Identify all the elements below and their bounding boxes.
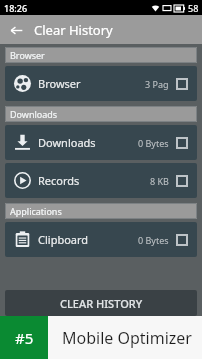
button[interactable]: Clipboard: [5, 222, 197, 257]
staticText: 58: [188, 2, 199, 14]
staticText: Clipboard: [38, 232, 138, 247]
staticText: 18:26: [4, 2, 28, 14]
staticText: Applications: [10, 205, 62, 217]
staticText: Records: [38, 173, 150, 188]
staticText: Downloads: [10, 108, 58, 120]
staticText: Browser: [38, 76, 145, 91]
button[interactable]: Downloads: [5, 125, 197, 160]
button[interactable]: Select Downloads: [176, 137, 188, 149]
button[interactable]: Browser: [5, 66, 197, 101]
button[interactable]: Select Clipboard: [176, 234, 188, 246]
button[interactable]: Records: [5, 163, 197, 198]
staticText: CLEAR HISTORY: [60, 296, 143, 311]
staticText: 8 KB: [150, 175, 169, 187]
staticText: 0 Bytes: [138, 137, 169, 149]
button[interactable]: Select Records: [176, 175, 188, 187]
staticText: Downloads: [38, 135, 138, 150]
staticText: Clear History: [34, 21, 113, 39]
staticText: Browser: [10, 49, 45, 61]
button[interactable]: Select Browser: [176, 78, 188, 90]
staticText: 0 Bytes: [138, 234, 169, 246]
button[interactable]: CLEAR HISTORY: [5, 290, 197, 316]
button[interactable]: Back: [4, 18, 28, 42]
staticText: #5: [15, 328, 34, 348]
staticText: Mobile Optimizer: [62, 327, 192, 349]
staticText: 3 Pag: [145, 78, 169, 90]
